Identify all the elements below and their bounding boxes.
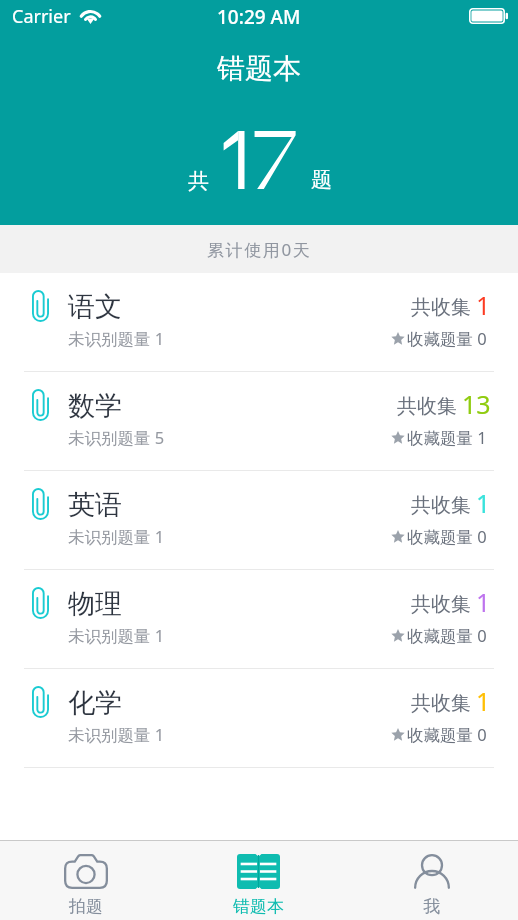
staticText: 错题本 (0, 51, 518, 86)
staticText: 题 (311, 167, 332, 193)
staticText: 1 (476, 486, 491, 520)
staticText: 共收集 (411, 691, 471, 716)
staticText: 共收集 (411, 592, 471, 617)
other: 17 (222, 131, 296, 189)
button[interactable]: Camera, take a photo of a question (0, 841, 172, 917)
staticText: 未识别题量 1 (68, 624, 165, 647)
staticText: 错题本 (233, 896, 284, 917)
staticText: 共收集 (397, 394, 457, 419)
staticText: 收藏题量 0 (407, 525, 487, 548)
staticText: 化学 (68, 686, 122, 720)
staticText: 收藏题量 0 (407, 327, 487, 350)
staticText: 我 (423, 896, 440, 917)
staticText: 未识别题量 1 (68, 327, 165, 350)
staticText: 累计使用0天 (207, 238, 312, 261)
button[interactable]: Wrong question book (172, 841, 345, 917)
staticText: Carrier (12, 4, 71, 29)
button[interactable]: 英语 subject, open wrong questions (0, 471, 518, 569)
staticText: 收藏题量 0 (407, 624, 487, 647)
staticText: 共 (188, 168, 209, 194)
staticText: 1 (476, 684, 491, 718)
staticText: 未识别题量 5 (68, 426, 165, 449)
staticText: 共收集 (411, 295, 471, 320)
staticText: 未识别题量 1 (68, 525, 165, 548)
staticText: 未识别题量 1 (68, 723, 165, 746)
staticText: 数学 (68, 389, 122, 423)
button[interactable]: 语文 subject, open wrong questions (0, 273, 518, 371)
staticText: 收藏题量 1 (407, 426, 487, 449)
button[interactable]: 物理 subject, open wrong questions (0, 570, 518, 668)
staticText: 英语 (68, 488, 122, 522)
staticText: 1 (476, 288, 491, 322)
staticText: 语文 (68, 290, 122, 324)
staticText: 10:29 AM (217, 4, 301, 30)
button[interactable]: 数学 subject, open wrong questions (0, 372, 518, 470)
button[interactable]: 化学 subject, open wrong questions (0, 669, 518, 767)
staticText: 收藏题量 0 (407, 723, 487, 746)
button[interactable]: Profile (345, 841, 518, 917)
staticText: 物理 (68, 587, 122, 621)
staticText: 1 (476, 585, 491, 619)
staticText: 拍题 (69, 896, 103, 917)
staticText: 共收集 (411, 493, 471, 518)
staticText: 13 (462, 387, 491, 421)
